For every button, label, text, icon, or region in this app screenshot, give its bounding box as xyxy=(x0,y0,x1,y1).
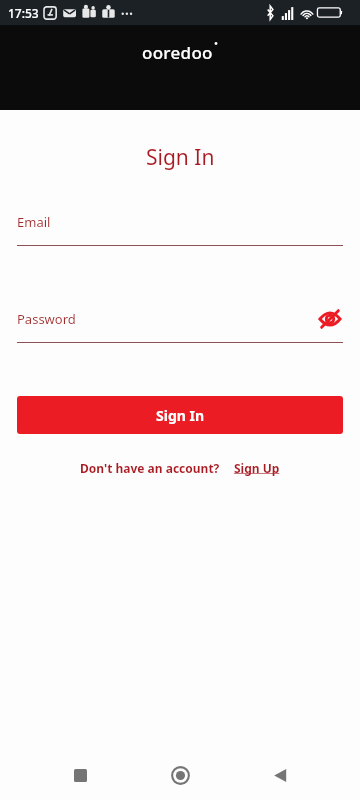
button[interactable]: Sign In xyxy=(17,396,343,434)
staticText: Sign Up xyxy=(234,460,280,476)
button[interactable]: Show password xyxy=(317,307,343,331)
button[interactable]: Home xyxy=(160,755,200,795)
staticText: Sign In xyxy=(146,143,215,172)
staticText: ooredoo xyxy=(142,41,213,64)
staticText: Email xyxy=(17,213,51,231)
staticText: 17:53 xyxy=(8,5,39,21)
staticText: Don't have an account? xyxy=(80,460,220,476)
button[interactable]: Sign Up xyxy=(234,460,280,476)
button[interactable]: Back xyxy=(260,755,300,795)
staticText: Password xyxy=(17,310,76,328)
button[interactable]: Recent apps xyxy=(60,755,100,795)
staticText: Sign In xyxy=(156,406,205,425)
